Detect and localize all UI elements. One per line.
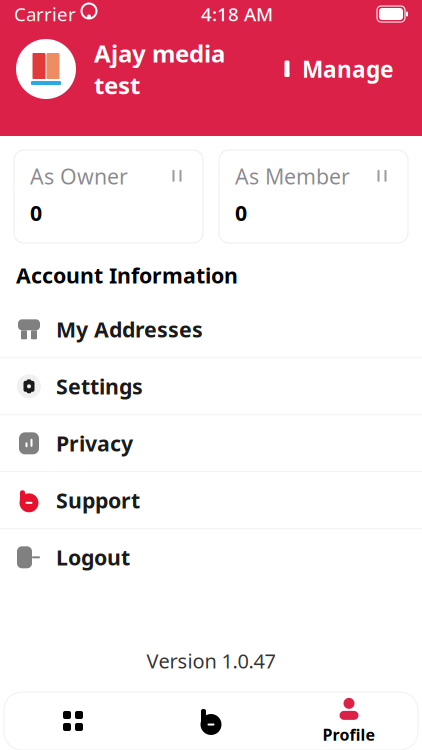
staticText: Ajay media test (94, 37, 225, 101)
staticText: Support (56, 486, 140, 514)
staticText: As Owner (30, 162, 128, 190)
button[interactable]: Home (142, 692, 280, 750)
staticText: Settings (56, 372, 143, 400)
button[interactable]: Logout (0, 529, 422, 585)
button[interactable]: Support (0, 472, 422, 528)
button[interactable]: Profile (280, 692, 418, 750)
staticText: Logout (56, 543, 130, 571)
button[interactable]: Manage (269, 46, 404, 92)
staticText: Privacy (56, 429, 133, 457)
button[interactable]: Privacy (0, 415, 422, 471)
staticText: Version 1.0.47 (146, 647, 275, 674)
staticText: 4:18 AM (201, 2, 273, 26)
staticText: Carrier (14, 2, 76, 26)
staticText: My Addresses (56, 315, 203, 343)
staticText: 0 (235, 198, 247, 227)
button[interactable]: As Owner (14, 150, 203, 243)
staticText: Profile (322, 724, 375, 745)
staticText: As Member (235, 162, 350, 190)
staticText: 0 (30, 198, 42, 227)
button[interactable]: Dashboard (4, 692, 142, 750)
button[interactable]: My Addresses (0, 301, 422, 357)
staticText: Account Information (16, 261, 238, 289)
button[interactable]: As Member (219, 150, 408, 243)
button[interactable]: Settings (0, 358, 422, 414)
staticText: Manage (302, 54, 394, 84)
